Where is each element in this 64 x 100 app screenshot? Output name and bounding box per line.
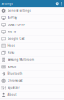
button[interactable]: Samsung Multiroom — [0, 56, 64, 63]
button[interactable]: Chromecast — [0, 77, 64, 84]
button[interactable]: DLNA / UPnP — [0, 21, 64, 28]
button[interactable]: General settings — [0, 7, 64, 14]
staticText: Chromecast — [7, 79, 22, 83]
staticText: Settings — [1, 2, 12, 5]
button[interactable]: About — [0, 91, 64, 98]
staticText: Roku — [7, 51, 14, 55]
staticText: Bluetooth — [7, 72, 22, 76]
button[interactable]: Roku — [0, 49, 64, 56]
staticText: About — [7, 93, 16, 97]
staticText: General settings — [7, 9, 30, 13]
button[interactable]: Settings — [54, 0, 60, 7]
button[interactable]: More options — [60, 0, 64, 7]
staticText: Heos — [7, 44, 14, 48]
staticText: Fire TV — [7, 30, 16, 34]
staticText: DLNA / UPnP — [7, 23, 25, 27]
staticText: Google Cast — [7, 37, 24, 41]
staticText: Equalizer — [7, 86, 19, 90]
button[interactable]: Bluetooth — [0, 70, 64, 77]
staticText: Samsung Multiroom — [7, 58, 33, 62]
button[interactable]: Equalizer — [0, 84, 64, 91]
staticText: SONOS — [7, 65, 15, 69]
button[interactable]: Google Cast — [0, 35, 64, 42]
button[interactable]: AirPlay — [0, 14, 64, 21]
button[interactable]: Heos — [0, 42, 64, 49]
button[interactable]: SONOS — [0, 63, 64, 70]
staticText: AirPlay — [7, 16, 16, 20]
button[interactable]: Fire TV — [0, 28, 64, 35]
